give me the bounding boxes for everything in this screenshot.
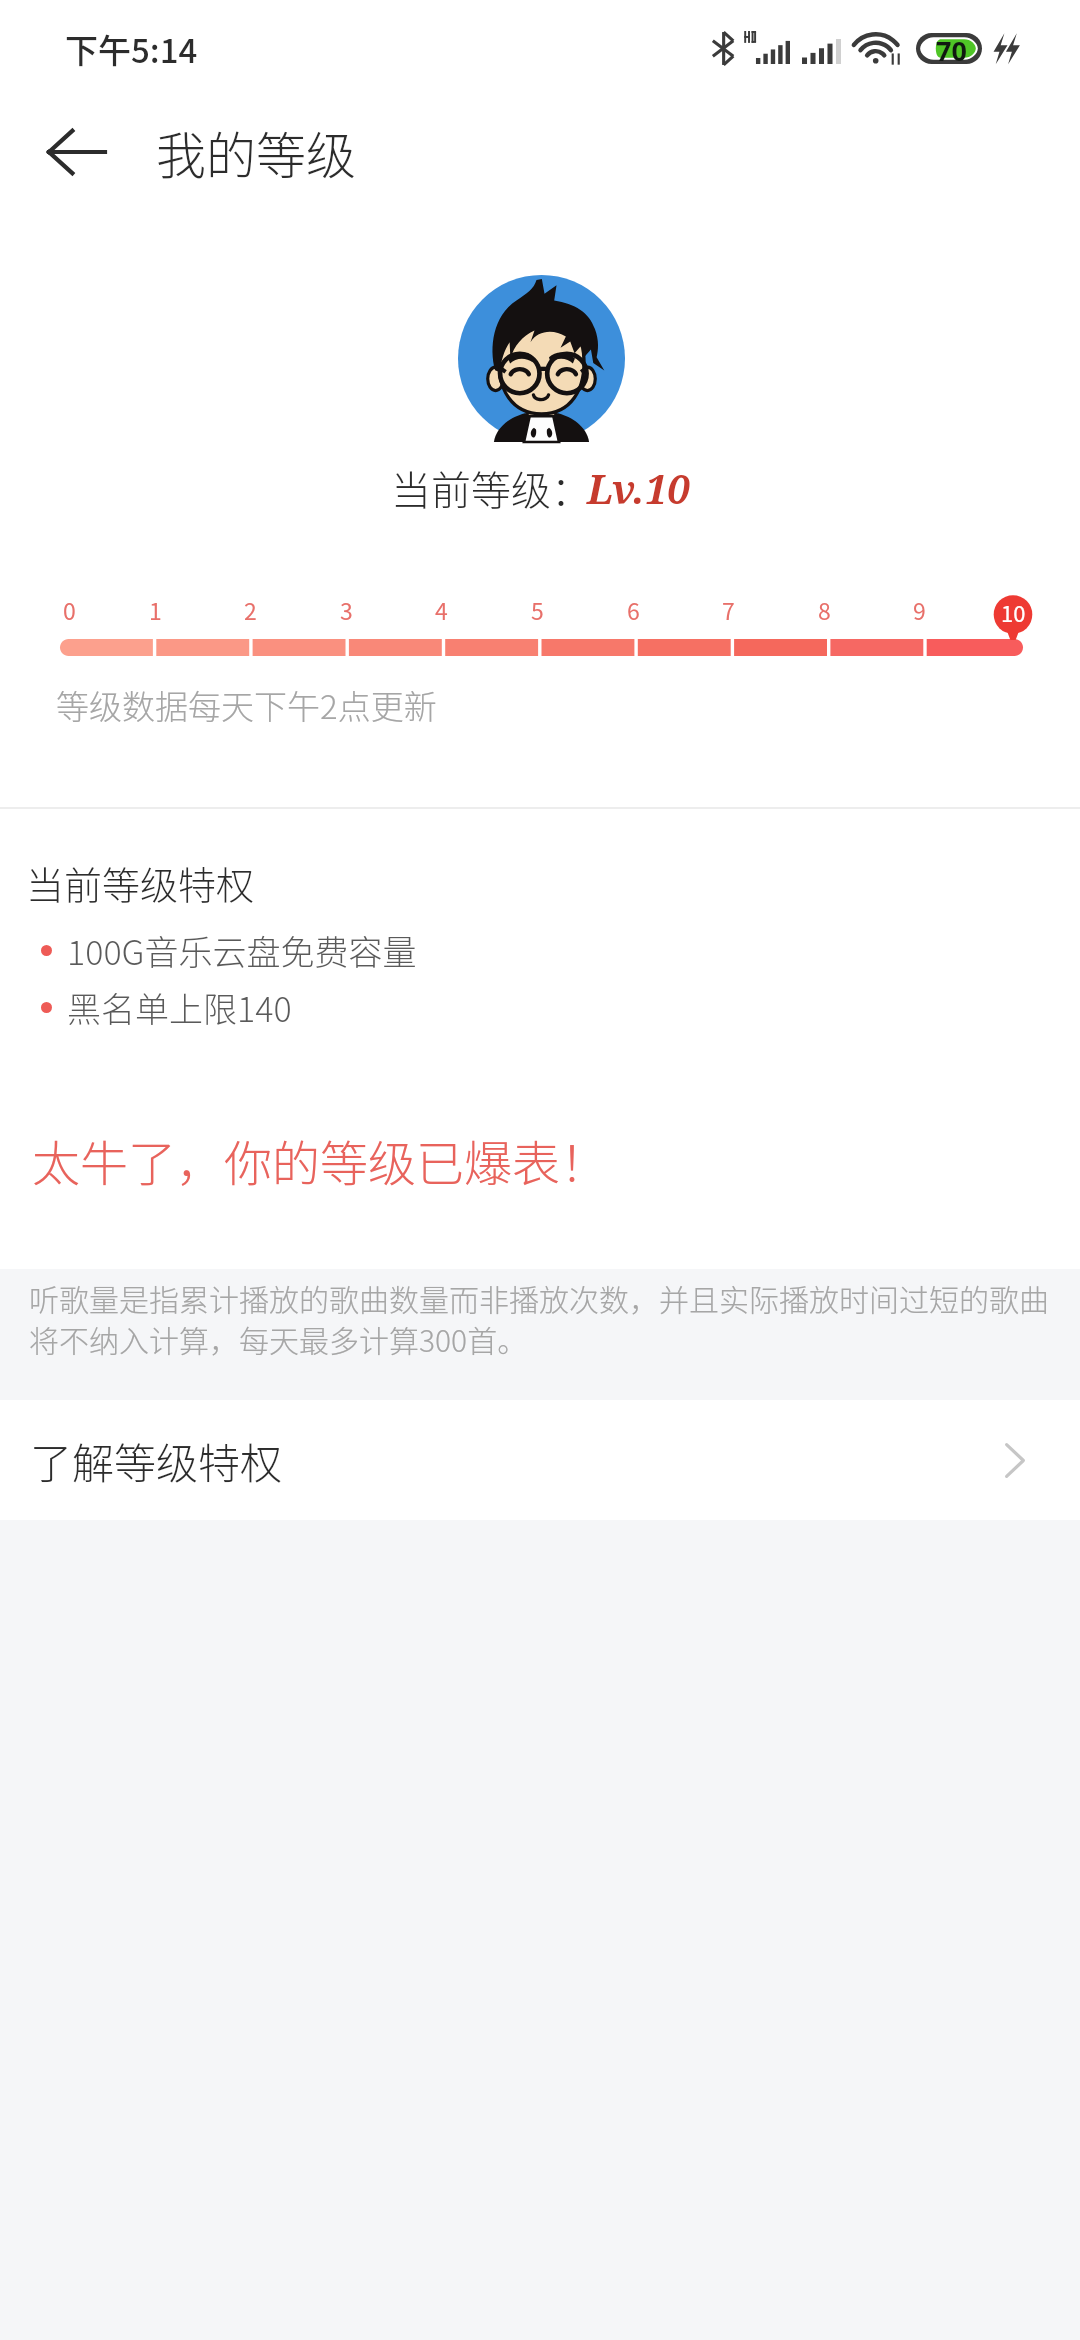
staticText: 当前等级： bbox=[391, 459, 591, 517]
staticText: 8 bbox=[818, 593, 831, 626]
button[interactable]: Back bbox=[30, 105, 124, 199]
staticText: 100G音乐云盘免费容量 bbox=[67, 926, 417, 975]
staticText: 7 bbox=[722, 593, 735, 626]
staticText: Lv.10 bbox=[587, 461, 690, 515]
button[interactable]: 了解等级特权 bbox=[0, 1400, 1080, 1520]
staticText: 5 bbox=[531, 593, 544, 626]
staticText: 3 bbox=[340, 593, 353, 626]
staticText: 我的等级 bbox=[156, 116, 356, 188]
staticText: 当前等级特权 bbox=[26, 855, 255, 910]
staticText: 了解等级特权 bbox=[30, 1430, 283, 1491]
staticText: 黑名单上限140 bbox=[67, 983, 292, 1032]
staticText: 听歌量是指累计播放的歌曲数量而非播放次数，并且实际播放时间过短的歌曲将不纳入计算… bbox=[29, 1276, 1053, 1360]
staticText: 6 bbox=[627, 593, 640, 626]
staticText: 太牛了，你的等级已爆表！ bbox=[32, 1125, 609, 1195]
staticText: 等级数据每天下午2点更新 bbox=[56, 681, 437, 729]
staticText: 1 bbox=[149, 593, 162, 626]
staticText: 10 bbox=[1001, 596, 1026, 628]
staticText: 9 bbox=[913, 593, 926, 626]
staticText: 2 bbox=[244, 593, 257, 626]
staticText: 下午5:14 bbox=[65, 25, 198, 73]
staticText: 4 bbox=[435, 593, 448, 626]
staticText: 70 bbox=[936, 32, 967, 69]
staticText: 0 bbox=[63, 593, 76, 626]
